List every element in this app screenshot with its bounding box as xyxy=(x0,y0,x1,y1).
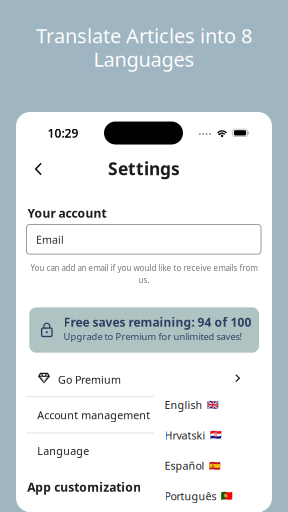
staticText: English xyxy=(164,398,202,412)
staticText: 🇭🇷 xyxy=(209,430,221,441)
staticText: Settings xyxy=(108,157,180,180)
staticText: 10:29 xyxy=(47,125,78,141)
staticText: Account management xyxy=(37,408,150,422)
button[interactable]: Back xyxy=(25,156,51,182)
staticText: App customization xyxy=(27,479,141,495)
staticText: Português xyxy=(164,489,216,503)
button[interactable]: Go Premium xyxy=(26,360,262,396)
staticText: You can add an email if you would like t… xyxy=(30,263,257,273)
staticText: Email xyxy=(36,232,64,247)
button[interactable]: Language xyxy=(26,433,262,468)
button[interactable]: English xyxy=(154,390,262,420)
button[interactable]: Hrvatski xyxy=(154,420,262,450)
staticText: Español xyxy=(164,459,204,473)
staticText: Translate Articles into 8 xyxy=(36,22,252,49)
staticText: us. xyxy=(138,275,149,285)
button[interactable]: Account management xyxy=(26,397,262,432)
staticText: Hrvatski xyxy=(164,428,205,442)
staticText: Language xyxy=(37,444,89,458)
staticText: Free saves remaining: 94 of 100 xyxy=(63,314,251,330)
button[interactable]: Português xyxy=(154,481,262,511)
staticText: 🇬🇧 xyxy=(206,400,218,410)
staticText: 🇵🇹 xyxy=(220,491,232,501)
staticText: 🇪🇸 xyxy=(208,460,220,471)
staticText: Upgrade to Premium for unlimited saves! xyxy=(63,330,242,343)
staticText: Languages xyxy=(93,46,194,72)
staticText: Go Premium xyxy=(58,372,121,387)
staticText: Your account xyxy=(27,205,106,221)
button[interactable]: Español xyxy=(154,450,262,481)
